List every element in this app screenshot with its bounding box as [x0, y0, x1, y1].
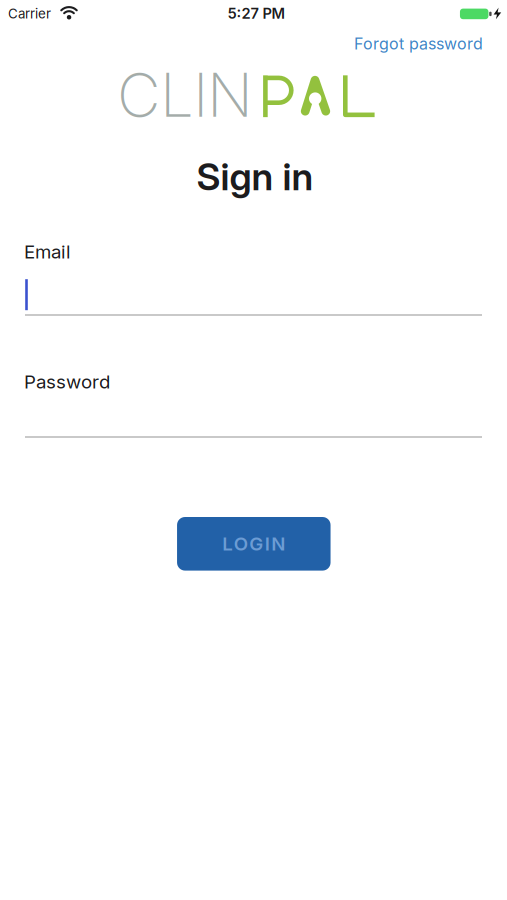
staticText: Carrier — [8, 6, 51, 22]
staticText: Forgot password — [354, 34, 483, 53]
staticText: LOGIN — [222, 533, 285, 555]
button[interactable]: Forgot password — [354, 34, 483, 53]
staticText: Sign in — [196, 155, 313, 199]
button[interactable]: LOGIN — [177, 517, 331, 571]
button[interactable] — [25, 394, 482, 438]
staticText: Password — [24, 371, 110, 393]
button[interactable] — [25, 272, 482, 316]
staticText: CLIN — [117, 59, 253, 130]
staticText: 5:27 PM — [227, 5, 285, 22]
staticText: Email — [24, 241, 71, 263]
